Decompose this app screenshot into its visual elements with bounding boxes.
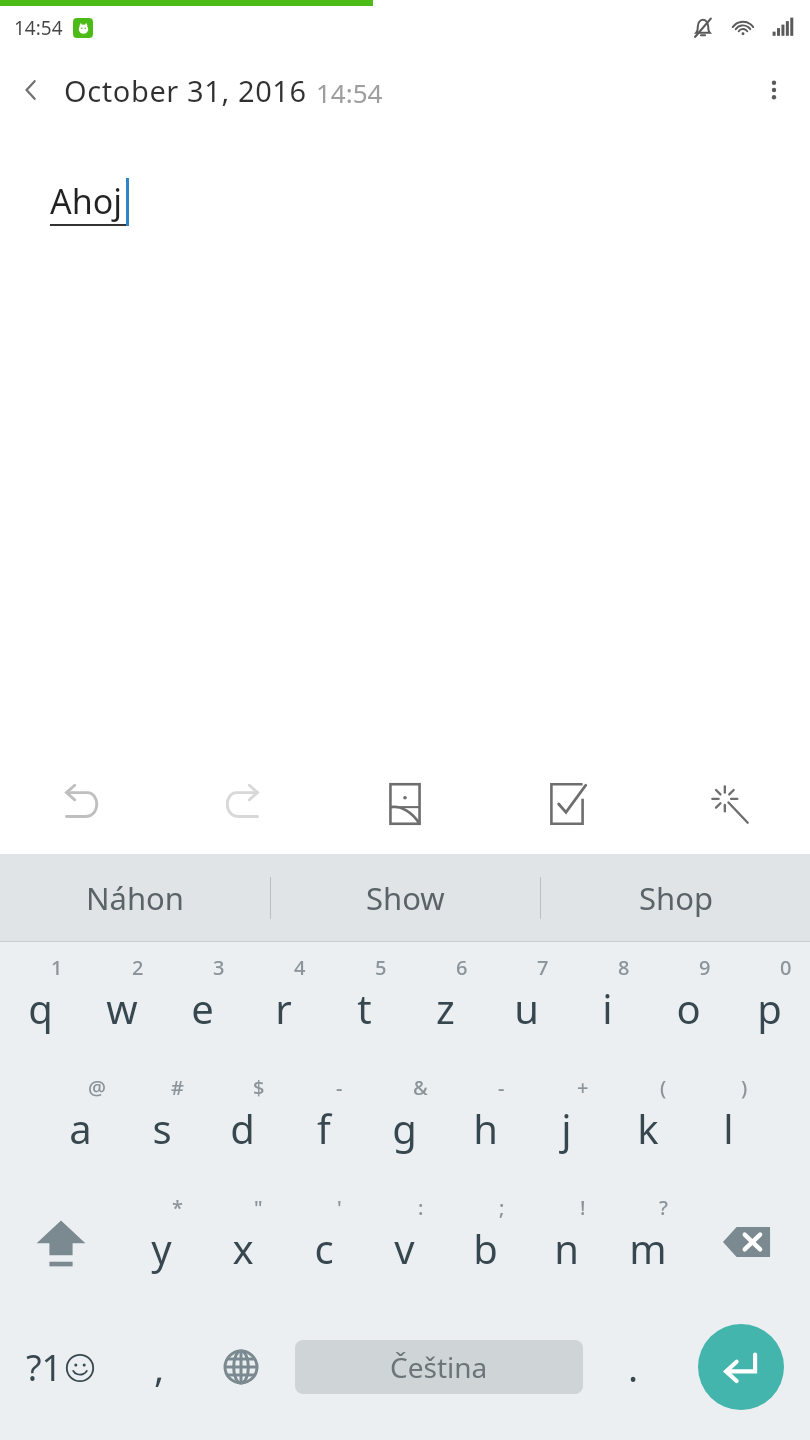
button[interactable]: Backspace [688,1182,810,1302]
staticText: 5 [375,954,387,981]
button[interactable]: Change keyboard language [198,1302,284,1432]
button[interactable]: : [364,1182,445,1302]
button[interactable]: ? [607,1182,688,1302]
staticText: 14:54 [14,15,63,41]
button[interactable]: ) [688,1062,769,1182]
staticText: h [473,1101,498,1155]
button[interactable]: 7 [486,942,567,1062]
staticText: 14:54 [316,75,383,110]
button[interactable]: & [364,1062,445,1182]
button[interactable]: ! [526,1182,607,1302]
staticText: k [637,1101,659,1155]
staticText: q [28,981,53,1035]
button[interactable]: Redo [162,754,324,854]
staticText: m [629,1221,667,1275]
staticText: g [392,1101,417,1155]
button[interactable]: Insert checklist [486,754,648,854]
staticText: j [561,1101,572,1155]
button[interactable]: @ [40,1062,121,1182]
staticText: + [577,1074,589,1101]
button[interactable]: ( [607,1062,688,1182]
button[interactable]: ' [283,1182,364,1302]
staticText: s [152,1101,172,1155]
button[interactable]: 0 [729,942,810,1062]
staticText: ) [741,1074,748,1101]
staticText: Show [366,877,445,919]
staticText: v [394,1221,415,1275]
staticText: 2 [132,954,144,981]
staticText: a [69,1101,92,1155]
staticText: : [418,1194,424,1221]
staticText: # [171,1074,184,1101]
staticText: $ [253,1074,265,1101]
button[interactable]: Shift [0,1182,121,1302]
button[interactable]: Enter [672,1302,810,1432]
staticText: @ [88,1074,106,1101]
staticText: e [191,981,214,1035]
staticText: b [473,1221,498,1275]
button[interactable]: Náhon [0,854,270,942]
button[interactable]: Effects [648,754,810,854]
staticText: - [498,1074,505,1101]
button[interactable]: Čeština [295,1340,583,1394]
staticText: n [554,1221,579,1275]
staticText: * [172,1194,183,1221]
staticText: ' [337,1194,342,1221]
button[interactable]: 5 [324,942,405,1062]
button[interactable]: Undo [0,754,162,854]
button[interactable]: # [121,1062,202,1182]
button[interactable]: " [202,1182,283,1302]
staticText: 0 [780,954,792,981]
staticText: ?1 [26,1343,63,1392]
button[interactable]: Insert image [324,754,486,854]
button[interactable]: 3 [162,942,243,1062]
button[interactable]: Back [0,50,62,130]
button[interactable]: 1 [0,942,81,1062]
staticText: Ahoj [50,178,123,224]
staticText: ( [660,1074,667,1101]
staticText: u [514,981,539,1035]
button[interactable]: . [594,1302,672,1432]
staticText: w [106,981,138,1035]
staticText: 4 [294,954,306,981]
staticText: p [757,981,782,1035]
staticText: l [723,1101,734,1155]
staticText: o [676,981,701,1035]
button[interactable]: Symbols and emoji [0,1302,120,1432]
button[interactable]: - [283,1062,364,1182]
button[interactable]: 8 [567,942,648,1062]
button[interactable]: - [445,1062,526,1182]
staticText: 9 [699,954,711,981]
staticText: 7 [537,954,549,981]
button[interactable]: + [526,1062,607,1182]
staticText: y [151,1221,172,1275]
button[interactable]: 6 [405,942,486,1062]
staticText: , [154,1341,165,1393]
staticText: " [254,1194,263,1221]
staticText: d [230,1101,255,1155]
staticText: Čeština [390,1348,488,1386]
staticText: t [357,981,372,1035]
staticText: z [436,981,455,1035]
staticText: . [628,1341,639,1393]
button[interactable]: 9 [648,942,729,1062]
button[interactable]: Show [271,854,540,942]
button[interactable]: 2 [81,942,162,1062]
staticText: - [336,1074,343,1101]
staticText: ? [659,1194,668,1221]
button[interactable]: More options [738,50,810,130]
staticText: 8 [618,954,630,981]
staticText: October 31, 2016 [64,71,307,110]
staticText: ; [499,1194,505,1221]
staticText: r [275,981,292,1035]
staticText: f [317,1101,331,1155]
staticText: 6 [456,954,468,981]
button[interactable]: ; [445,1182,526,1302]
button[interactable]: , [120,1302,198,1432]
button[interactable]: 4 [243,942,324,1062]
button[interactable]: * [121,1182,202,1302]
button[interactable]: $ [202,1062,283,1182]
staticText: 3 [213,954,225,981]
button[interactable]: Shop [541,854,810,942]
staticText: x [232,1221,254,1275]
